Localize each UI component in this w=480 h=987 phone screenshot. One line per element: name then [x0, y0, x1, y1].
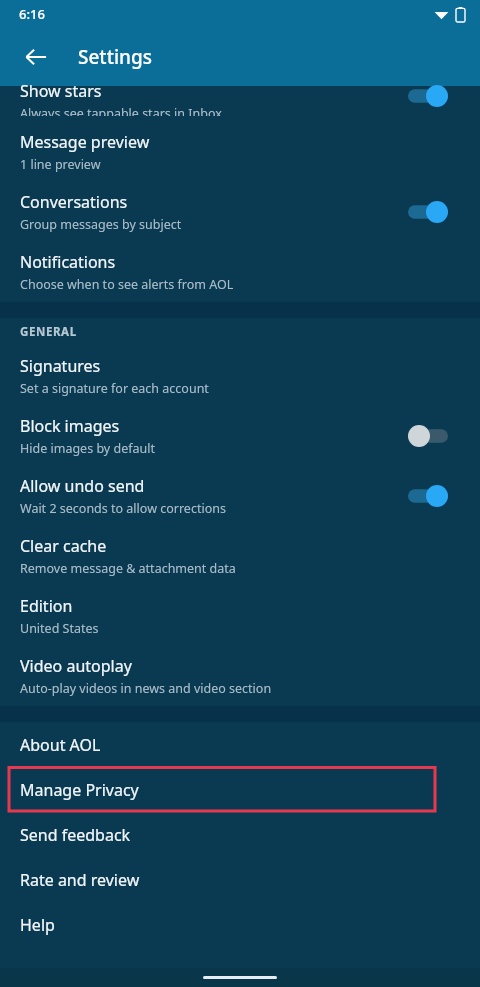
button[interactable]: Edition	[0, 586, 480, 646]
button[interactable]: Notifications	[0, 242, 480, 302]
button[interactable]: Allow undo send	[0, 466, 480, 526]
button[interactable]: Rate and review	[0, 857, 480, 902]
button[interactable]: Video autoplay	[0, 646, 480, 706]
staticText: Signatures	[20, 355, 101, 377]
button[interactable]: Signatures	[0, 346, 480, 406]
staticText: Allow undo send	[20, 475, 145, 497]
staticText: Send feedback	[20, 824, 131, 846]
staticText: Auto-play videos in news and video secti…	[20, 680, 272, 697]
staticText: Video autoplay	[20, 655, 132, 677]
staticText: Clear cache	[20, 535, 107, 557]
staticText: Wait 2 seconds to allow corrections	[20, 500, 226, 517]
staticText: Remove message & attachment data	[20, 560, 236, 577]
button[interactable]: Manage Privacy	[0, 767, 480, 812]
staticText: Notifications	[20, 251, 116, 273]
staticText: Set a signature for each account	[20, 380, 209, 397]
button[interactable]: Show stars	[0, 86, 480, 122]
staticText: Hide images by default	[20, 440, 155, 457]
staticText: Always see tappable stars in Inbox	[20, 105, 222, 116]
staticText: Group messages by subject	[20, 216, 182, 233]
staticText: Conversations	[20, 191, 128, 213]
staticText: Message preview	[20, 131, 150, 153]
button[interactable]: Back	[12, 33, 60, 81]
staticText: Rate and review	[20, 869, 140, 891]
staticText: Help	[20, 914, 55, 936]
staticText: About AOL	[20, 734, 101, 756]
button[interactable]: Send feedback	[0, 812, 480, 857]
button[interactable]: Block images	[0, 406, 480, 466]
staticText: Edition	[20, 595, 73, 617]
staticText: Block images	[20, 415, 120, 437]
button[interactable]: Conversations	[0, 182, 480, 242]
button[interactable]: Message preview	[0, 122, 480, 182]
button[interactable]: Help	[0, 902, 480, 947]
button[interactable]: Clear cache	[0, 526, 480, 586]
staticText: Manage Privacy	[20, 779, 139, 801]
staticText: GENERAL	[20, 324, 77, 340]
staticText: Show stars	[20, 80, 102, 102]
staticText: United States	[20, 620, 99, 637]
staticText: Choose when to see alerts from AOL	[20, 276, 234, 293]
button[interactable]: About AOL	[0, 722, 480, 767]
staticText: 1 line preview	[20, 156, 101, 173]
staticText: 6:16	[19, 5, 45, 23]
staticText: Settings	[78, 44, 152, 70]
